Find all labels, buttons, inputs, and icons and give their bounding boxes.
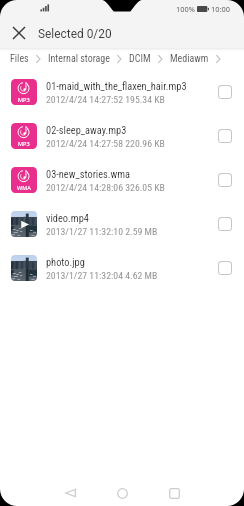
button[interactable]: Files: [10, 53, 29, 65]
staticText: 10:00: [211, 4, 230, 14]
button[interactable]: Close: [8, 22, 30, 44]
button[interactable]: video.mp4: [0, 202, 244, 246]
button[interactable]: DCIM: [129, 53, 151, 65]
staticText: MP3: [18, 96, 30, 104]
staticText: MP3: [18, 140, 30, 148]
staticText: 2013/1/27 11:32:04 4.62 MB: [46, 270, 158, 281]
staticText: WMA: [17, 184, 31, 192]
button[interactable]: Select: [214, 169, 236, 191]
button[interactable]: MP3: [0, 70, 244, 114]
button[interactable]: Select: [214, 257, 236, 279]
button[interactable]: Select: [214, 81, 236, 103]
staticText: 2012/4/24 14:27:52 195.34 KB: [46, 94, 165, 105]
button[interactable]: photo.jpg: [0, 246, 244, 290]
button[interactable]: Select: [214, 125, 236, 147]
staticText: Mediawm: [170, 53, 209, 65]
staticText: Files: [10, 53, 29, 65]
button[interactable]: WMA: [0, 158, 244, 202]
button[interactable]: Recents: [161, 480, 187, 506]
staticText: 2012/4/24 14:27:58 220.96 KB: [46, 138, 165, 149]
button[interactable]: Mediawm: [170, 53, 209, 65]
button[interactable]: Home: [109, 480, 135, 506]
staticText: DCIM: [129, 53, 151, 65]
staticText: 03-new_stories.wma: [46, 168, 131, 180]
button[interactable]: Back: [57, 480, 83, 506]
staticText: 100%: [176, 4, 195, 14]
staticText: video.mp4: [46, 212, 89, 224]
staticText: 02-sleep_away.mp3: [46, 124, 127, 136]
staticText: 2013/1/27 11:32:10 2.59 MB: [46, 226, 158, 237]
staticText: Internal storage: [48, 53, 110, 65]
staticText: 2012/4/24 14:28:06 326.05 KB: [46, 182, 165, 193]
staticText: 01-maid_with_the_flaxen_hair.mp3: [46, 80, 187, 92]
button[interactable]: Select: [214, 213, 236, 235]
button[interactable]: MP3: [0, 114, 244, 158]
staticText: Selected 0/20: [38, 27, 112, 41]
button[interactable]: Internal storage: [48, 53, 110, 65]
staticText: photo.jpg: [46, 256, 85, 268]
